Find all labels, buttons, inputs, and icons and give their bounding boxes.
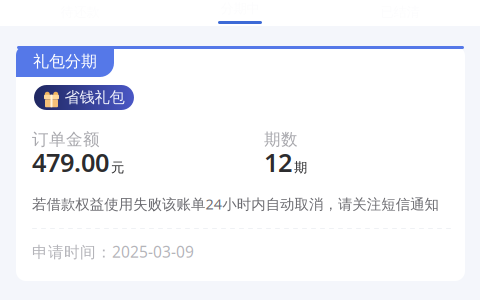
- staticText: 省钱礼包: [64, 88, 124, 107]
- staticText: 元: [111, 159, 124, 176]
- staticText: 若借款权益使用失败该账单24小时内自动取消，请关注短信通知: [32, 194, 439, 214]
- button[interactable]: 礼包分期: [16, 46, 114, 77]
- staticText: 期: [294, 159, 307, 176]
- button[interactable]: 分期中: [160, 0, 320, 24]
- staticText: 礼包分期: [33, 51, 97, 72]
- staticText: 申请时间：2025-03-09: [32, 241, 194, 262]
- staticText: 订单金额: [32, 129, 100, 150]
- button[interactable]: 省钱礼包: [34, 85, 134, 110]
- staticText: 12: [264, 145, 292, 179]
- staticText: 479.00: [32, 145, 109, 179]
- staticText: 期数: [264, 129, 298, 150]
